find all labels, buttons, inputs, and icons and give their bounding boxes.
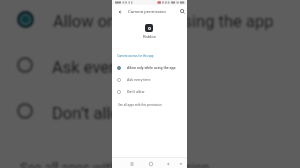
staticText: Camera access for this app [117, 54, 154, 58]
button[interactable]: Search [177, 6, 188, 17]
button[interactable]: Ask every time [112, 74, 187, 86]
staticText: See all apps with this permission [118, 103, 162, 107]
staticText: Ask every time [52, 58, 160, 77]
staticText: Camera permission [128, 9, 167, 14]
button[interactable]: Home [146, 159, 155, 168]
button[interactable]: Navigate up [114, 6, 125, 17]
button[interactable]: Allow only while using the app [112, 62, 187, 74]
button[interactable]: Don't allow [112, 86, 187, 98]
staticText: Don’t allow [52, 104, 133, 123]
button[interactable]: Hide keyboard [176, 159, 185, 168]
staticText: Allow only while using the app [127, 66, 176, 70]
staticText: Roblox [143, 34, 156, 39]
staticText: Allow only while using the app [53, 12, 274, 31]
button[interactable]: Recent apps [127, 159, 136, 168]
staticText: See all apps with this permission [20, 160, 210, 168]
staticText: Don't allow [127, 90, 145, 94]
button[interactable]: Back [163, 159, 172, 168]
staticText: Ask every time [127, 78, 151, 82]
